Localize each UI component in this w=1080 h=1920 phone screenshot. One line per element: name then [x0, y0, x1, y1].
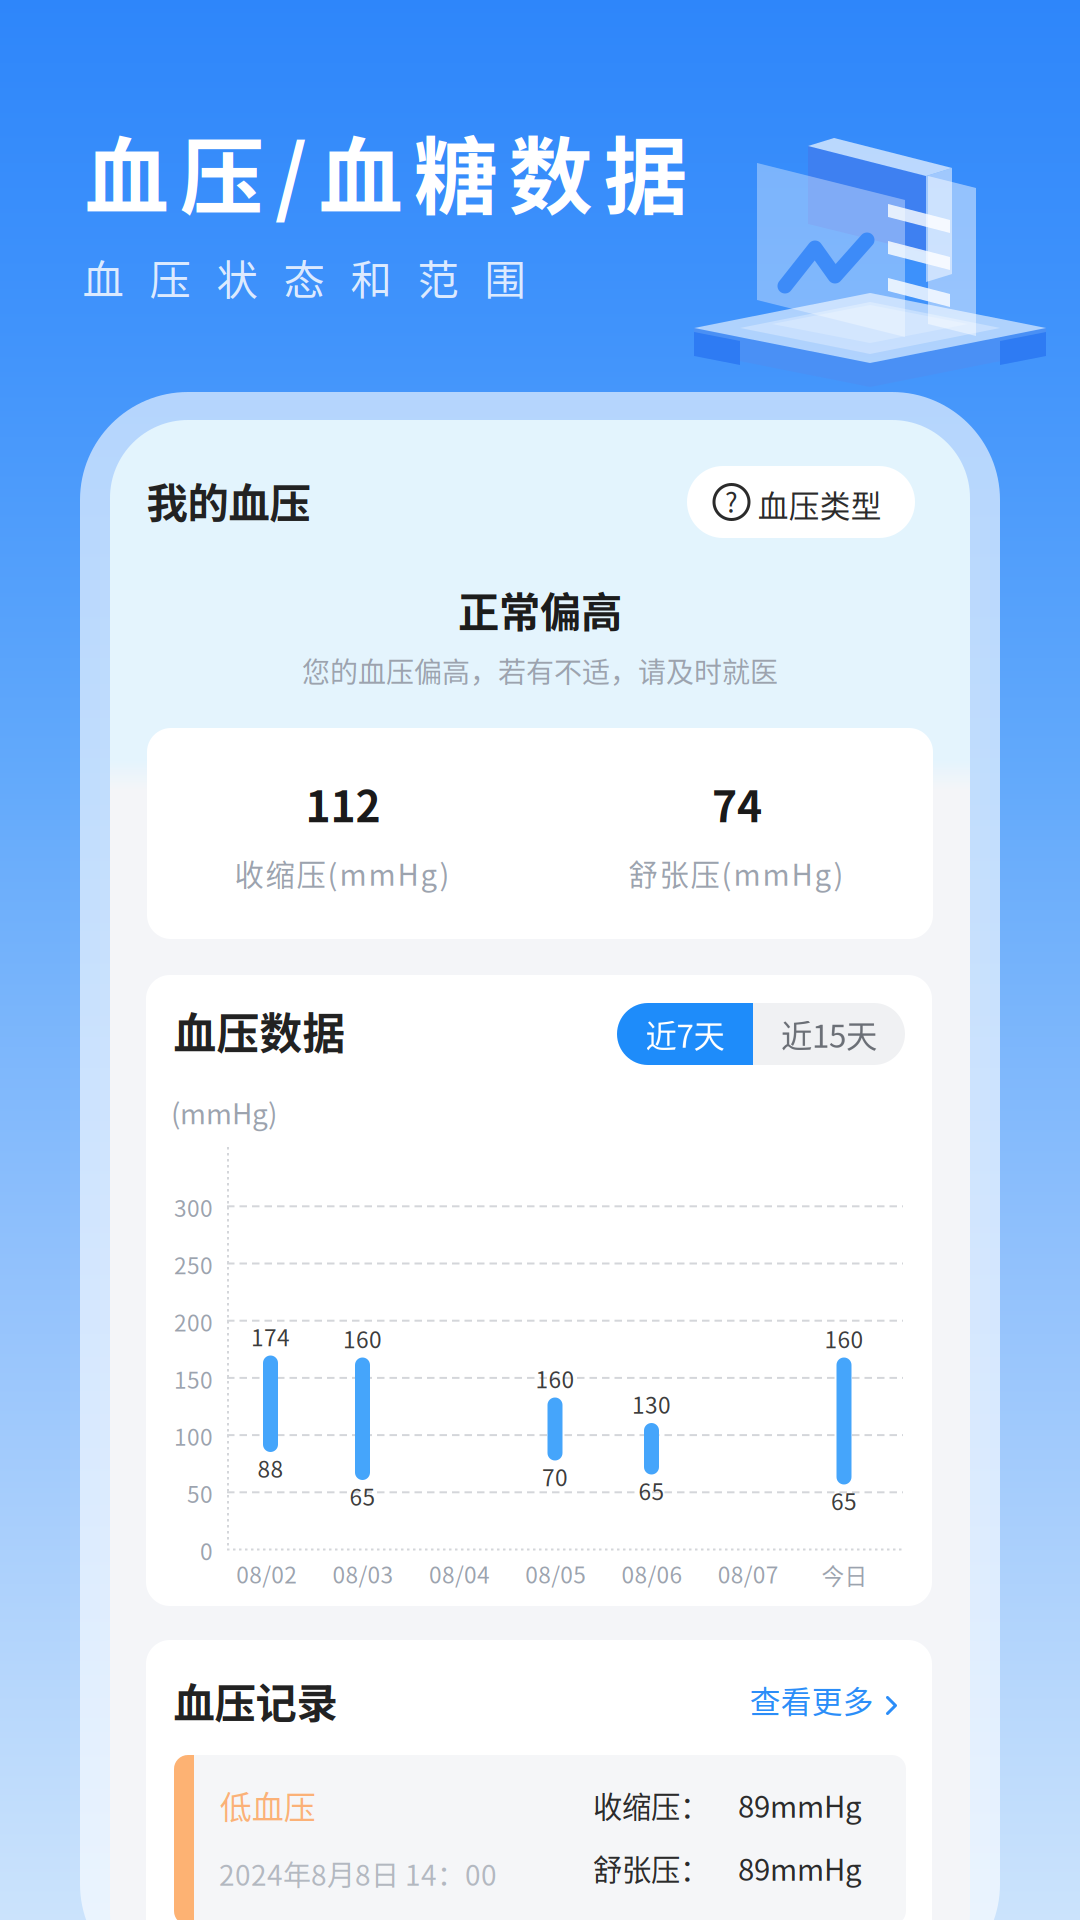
- button[interactable]: 血压类型: [687, 466, 915, 538]
- staticText: 舒张压： 89mmHg: [593, 1847, 862, 1889]
- staticText: 我的血压: [146, 470, 310, 530]
- staticText: (mmHg): [171, 1092, 277, 1132]
- staticText: 200: [174, 1305, 213, 1338]
- staticText: 100: [174, 1420, 213, 1452]
- staticText: 65: [638, 1474, 664, 1507]
- staticText: 160: [824, 1322, 863, 1355]
- staticText: 您的血压偏高，若有不适，请及时就医: [302, 650, 778, 691]
- staticText: 血压类型: [758, 482, 882, 526]
- staticText: 50: [187, 1477, 213, 1510]
- staticText: 正常偏高: [458, 579, 622, 639]
- staticText: 08/06: [621, 1557, 682, 1590]
- staticText: 低血压: [220, 1782, 316, 1828]
- staticText: 65: [349, 1479, 375, 1512]
- staticText: 收缩压： 89mmHg: [593, 1784, 862, 1826]
- staticText: 今日: [822, 1558, 868, 1591]
- staticText: 250: [174, 1248, 213, 1281]
- staticText: 88: [257, 1451, 283, 1484]
- staticText: 70: [542, 1460, 568, 1493]
- staticText: 174: [251, 1320, 290, 1353]
- staticText: 2024年8月8日 14：00: [219, 1853, 497, 1894]
- button[interactable]: 近15天: [753, 1003, 905, 1065]
- staticText: 65: [831, 1484, 857, 1517]
- staticText: 08/05: [525, 1557, 586, 1590]
- button[interactable]: 近7天: [617, 1003, 753, 1065]
- staticText: 近7天: [645, 1011, 724, 1057]
- staticText: 08/03: [333, 1557, 394, 1590]
- staticText: 血压/血糖数据: [85, 110, 688, 232]
- staticText: 08/04: [429, 1557, 490, 1590]
- staticText: 查看更多: [750, 1677, 874, 1722]
- button[interactable]: 低血压: [174, 1755, 906, 1920]
- staticText: 血压数据: [173, 1000, 345, 1062]
- staticText: 血压记录: [173, 1670, 337, 1730]
- staticText: 近15天: [781, 1011, 877, 1057]
- staticText: 160: [535, 1362, 574, 1395]
- staticText: 收缩压(mmHg): [234, 852, 449, 894]
- staticText: 300: [174, 1191, 213, 1224]
- staticText: 舒张压(mmHg): [628, 852, 843, 894]
- staticText: ?: [725, 482, 738, 520]
- staticText: 08/02: [236, 1557, 297, 1590]
- staticText: 160: [343, 1322, 382, 1355]
- staticText: 112: [305, 773, 380, 834]
- staticText: 130: [632, 1387, 671, 1420]
- staticText: 74: [712, 773, 762, 834]
- button[interactable]: 查看更多: [750, 1670, 910, 1732]
- staticText: 150: [174, 1362, 213, 1395]
- staticText: 08/07: [718, 1557, 779, 1590]
- staticText: 血压状态和范围: [82, 247, 525, 307]
- staticText: 0: [200, 1534, 213, 1567]
